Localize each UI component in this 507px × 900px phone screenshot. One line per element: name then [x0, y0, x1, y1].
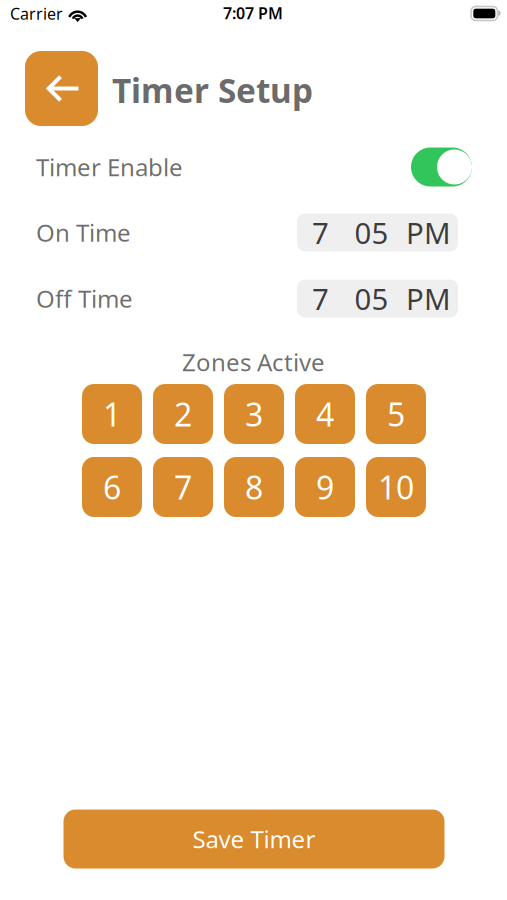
staticText: 7 [312, 279, 329, 318]
staticText: 7 [312, 213, 329, 252]
staticText: Off Time [36, 283, 133, 314]
staticText: Save Timer [192, 823, 315, 855]
button[interactable]: 5 [366, 384, 426, 444]
staticText: Timer Enable [36, 151, 183, 183]
button[interactable]: 3 [224, 384, 284, 444]
staticText: 5 [387, 393, 405, 435]
button[interactable]: 7 [153, 457, 213, 517]
button[interactable]: Timer Enable [411, 147, 472, 186]
button[interactable]: 6 [82, 457, 142, 517]
button[interactable]: Back [25, 51, 98, 126]
staticText: On Time [36, 217, 131, 248]
staticText: 2 [174, 393, 192, 435]
staticText: 7:07 PM [223, 2, 283, 24]
button[interactable]: 4 [295, 384, 355, 444]
staticText: 05 [354, 279, 388, 318]
staticText: 05 [354, 213, 388, 252]
staticText: 7 [174, 466, 192, 508]
staticText: 9 [316, 466, 334, 508]
staticText: 8 [245, 466, 263, 508]
button[interactable]: 8 [224, 457, 284, 517]
staticText: 4 [316, 393, 334, 435]
button[interactable]: 10 [366, 457, 426, 517]
staticText: Carrier [10, 3, 63, 24]
staticText: PM [406, 213, 451, 252]
staticText: 10 [378, 466, 414, 508]
staticText: Zones Active [182, 346, 325, 378]
button[interactable]: Save Timer [63, 809, 444, 868]
button[interactable]: 9 [295, 457, 355, 517]
staticText: 1 [103, 393, 121, 435]
button[interactable]: 1 [82, 384, 142, 444]
button[interactable]: 7 [297, 279, 458, 317]
staticText: 3 [245, 393, 263, 435]
button[interactable]: 2 [153, 384, 213, 444]
button[interactable]: 7 [297, 213, 458, 251]
staticText: 6 [103, 466, 121, 508]
staticText: PM [406, 279, 451, 318]
staticText: Timer Setup [112, 68, 313, 112]
